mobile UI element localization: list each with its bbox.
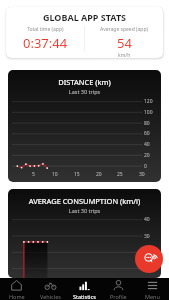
- staticText: Statistics: [73, 293, 96, 300]
- staticText: 0: [144, 163, 147, 170]
- button[interactable]: Voice assistant: [135, 245, 163, 273]
- staticText: 40: [144, 141, 150, 148]
- staticText: Home: [9, 293, 25, 300]
- staticText: 30: [144, 233, 150, 240]
- staticText: 15: [74, 171, 80, 178]
- button[interactable]: Statistics: [67, 279, 101, 300]
- staticText: DISTANCE (km): [8, 77, 161, 87]
- staticText: 20: [144, 152, 150, 159]
- staticText: Total time (app): [27, 26, 64, 33]
- button[interactable]: Vehicles: [33, 279, 67, 300]
- staticText: AVERAGE CONSUMPTION (km/l): [8, 196, 161, 206]
- staticText: km/h: [118, 52, 131, 58]
- staticText: Vehicles: [40, 293, 61, 300]
- staticText: 100: [144, 109, 153, 116]
- button[interactable]: Menu: [135, 279, 169, 300]
- button[interactable]: Profile: [101, 279, 135, 300]
- staticText: 54: [117, 34, 132, 52]
- staticText: 60: [144, 130, 150, 137]
- staticText: Menu: [145, 293, 160, 300]
- staticText: 20: [144, 249, 150, 256]
- staticText: 30: [139, 171, 145, 178]
- staticText: Last 30 trips: [8, 207, 161, 214]
- staticText: Average speed (app): [100, 26, 148, 33]
- button[interactable]: Home: [0, 279, 33, 300]
- staticText: Profile: [110, 293, 127, 300]
- staticText: 120: [144, 98, 153, 105]
- staticText: 5: [32, 171, 35, 178]
- staticText: 0:37:44: [23, 34, 68, 52]
- staticText: 20: [96, 171, 102, 178]
- staticText: 80: [144, 120, 150, 127]
- staticText: 10: [52, 171, 58, 178]
- staticText: Last 30 trips: [8, 88, 161, 95]
- staticText: 40: [144, 216, 150, 223]
- staticText: 25: [117, 171, 123, 178]
- staticText: GLOBAL APP STATS: [6, 11, 163, 23]
